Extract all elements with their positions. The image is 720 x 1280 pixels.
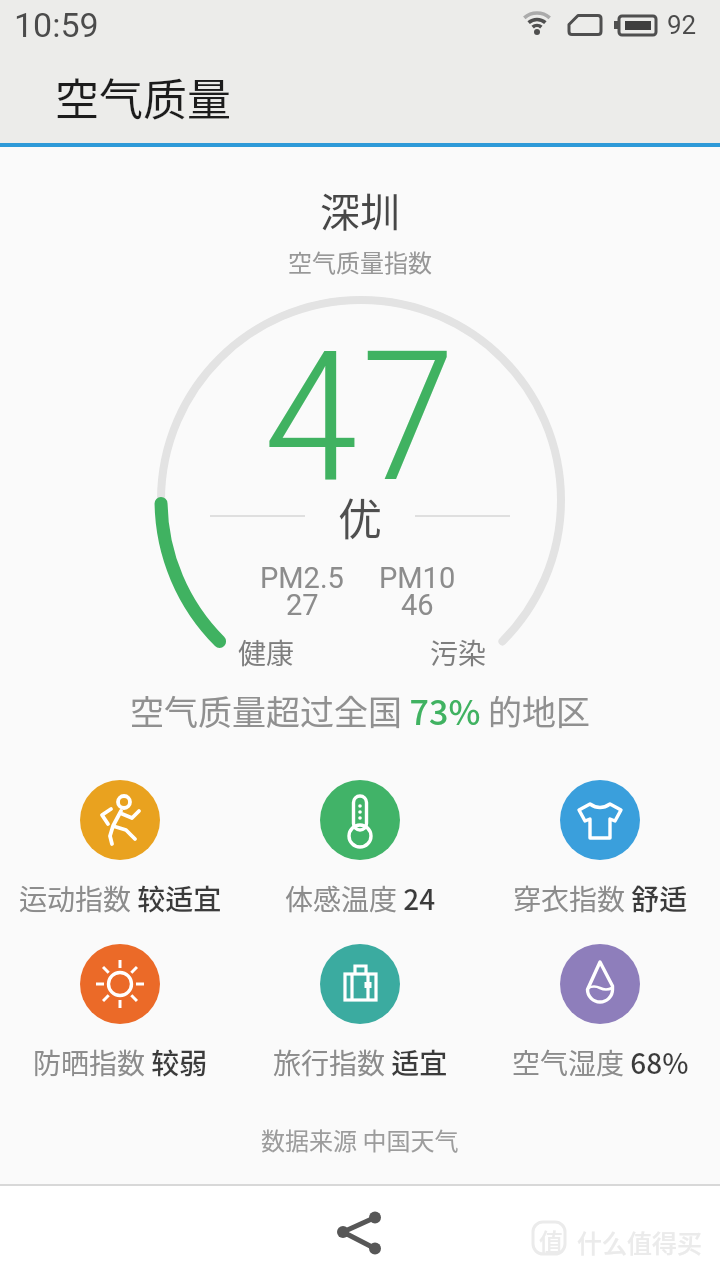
staticText: 47 <box>262 312 458 523</box>
button[interactable]: 空气湿度 68% <box>490 944 710 1094</box>
staticText: 防晒指数 较弱 <box>33 1042 208 1083</box>
button[interactable]: 穿衣指数 舒适 <box>490 780 710 930</box>
staticText: 穿衣指数 舒适 <box>513 878 688 919</box>
staticText: 旅行指数 适宜 <box>273 1042 448 1083</box>
staticText: 值 <box>539 1223 563 1258</box>
staticText: 空气质量指数 <box>288 244 432 279</box>
button[interactable]: 运动指数 较适宜 <box>10 780 230 930</box>
staticText: 运动指数 较适宜 <box>19 878 222 919</box>
staticText: 污染 <box>430 632 487 673</box>
staticText: 空气湿度 68% <box>512 1042 689 1083</box>
staticText: 体感温度 24 <box>285 878 436 919</box>
staticText: 优 <box>338 485 382 549</box>
staticText: 46 <box>401 588 434 622</box>
staticText: PM10 <box>379 561 456 595</box>
button[interactable]: 旅行指数 适宜 <box>250 944 470 1094</box>
button[interactable]: 空气质量 <box>0 50 720 143</box>
button[interactable]: 防晒指数 较弱 <box>10 944 230 1094</box>
staticText: 数据来源 中国天气 <box>261 1122 459 1157</box>
button[interactable] <box>328 1201 392 1265</box>
staticText: 27 <box>286 588 319 622</box>
staticText: 健康 <box>238 632 295 673</box>
staticText: PM2.5 <box>260 561 344 595</box>
staticText: 10:59 <box>14 5 99 45</box>
staticText: 深圳 <box>320 181 400 239</box>
staticText: 92 <box>667 10 697 40</box>
button[interactable]: 体感温度 24 <box>250 780 470 930</box>
staticText: 空气质量 <box>55 65 231 129</box>
staticText: 什么值得买 <box>577 1224 703 1260</box>
staticText: 空气质量超过全国 73% 的地区 <box>130 686 590 735</box>
